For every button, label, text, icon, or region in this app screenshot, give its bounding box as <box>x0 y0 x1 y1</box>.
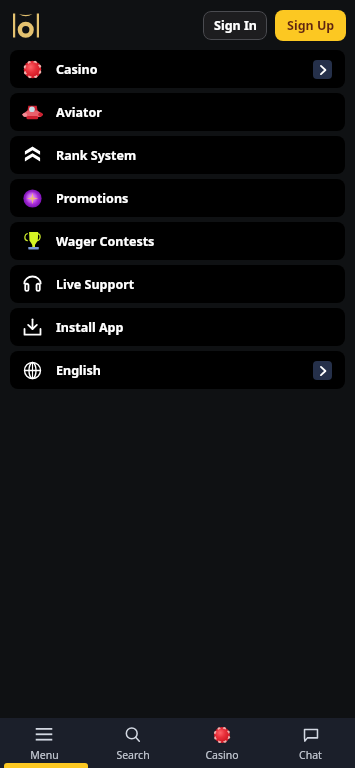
button[interactable]: Install App <box>10 308 345 346</box>
button[interactable]: English <box>10 351 345 389</box>
staticText: Aviator <box>56 104 102 121</box>
staticText: Live Support <box>56 276 135 293</box>
staticText: Sign In <box>214 17 257 34</box>
button[interactable]: Rank System <box>10 136 345 174</box>
staticText: Menu <box>30 748 59 762</box>
button[interactable]: Aviator <box>10 93 345 131</box>
button[interactable]: Home logo <box>13 13 39 38</box>
staticText: Chat <box>299 748 322 762</box>
staticText: Wager Contests <box>56 233 155 250</box>
button[interactable]: Open English <box>313 361 332 380</box>
staticText: Search <box>116 748 150 762</box>
button[interactable]: Open Casino <box>313 60 332 79</box>
staticText: Casino <box>205 748 239 762</box>
button[interactable]: Casino <box>10 50 345 88</box>
button[interactable]: Casino <box>177 718 266 768</box>
staticText: Casino <box>56 61 98 78</box>
button[interactable]: Search <box>88 718 177 768</box>
button[interactable]: Promotions <box>10 179 345 217</box>
button[interactable]: Sign In <box>203 11 267 40</box>
button[interactable]: Sign Up <box>275 10 346 41</box>
button[interactable]: Live Support <box>10 265 345 303</box>
button[interactable]: Wager Contests <box>10 222 345 260</box>
staticText: Promotions <box>56 190 129 207</box>
staticText: English <box>56 362 101 379</box>
button[interactable]: Chat <box>266 718 355 768</box>
staticText: Sign Up <box>287 17 335 34</box>
staticText: Install App <box>56 319 124 336</box>
staticText: Rank System <box>56 147 137 164</box>
button[interactable]: Menu <box>0 718 88 768</box>
